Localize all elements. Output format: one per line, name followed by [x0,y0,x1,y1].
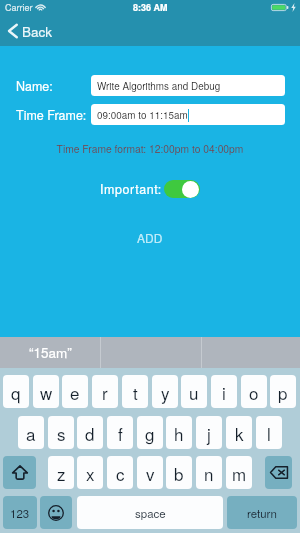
button[interactable]: m [226,456,252,489]
button[interactable]: x [77,456,103,489]
staticText: 8:36 AM [133,1,168,14]
staticText: l [267,421,271,445]
staticText: space [135,505,166,521]
button[interactable]: u [181,375,207,408]
staticText: q [11,380,21,404]
button[interactable]: 09:00am to 11:15am [91,104,285,125]
staticText: f [118,421,123,445]
staticText: m [232,461,247,485]
button[interactable]: c [107,456,133,489]
staticText: y [161,380,170,404]
staticText: “15am” [29,343,72,362]
button[interactable]: v [137,456,163,489]
staticText: 09:00am to 11:15am [97,108,188,122]
button[interactable]: j [196,416,222,449]
staticText: Time Frame: [16,106,87,124]
staticText: 123 [10,505,30,521]
button[interactable]: “15am” [0,337,100,368]
staticText: i [222,380,226,404]
staticText: Back [22,22,53,41]
staticText: c [116,461,125,485]
staticText: ADD [137,229,163,246]
button[interactable]: p [270,375,296,408]
staticText: u [189,380,199,404]
staticText: g [145,421,155,445]
staticText: Name: [16,77,53,95]
button[interactable]: z [48,456,74,489]
button[interactable]: a [18,416,44,449]
staticText: v [146,461,155,485]
button[interactable]: b [166,456,192,489]
button[interactable]: f [107,416,133,449]
staticText: Time Frame format: 12:00pm to 04:00pm [0,141,300,156]
button[interactable]: n [196,456,222,489]
staticText: Carrier [5,1,33,14]
button[interactable]: s [48,416,74,449]
button[interactable]: q [3,375,29,408]
button[interactable]: g [137,416,163,449]
staticText: n [204,461,214,485]
staticText: return [247,505,277,521]
staticText: a [26,421,36,445]
button[interactable]: Shift [3,456,36,489]
button[interactable]: space [77,496,223,529]
button[interactable]: ADD [117,224,183,251]
staticText: w [40,380,53,404]
button[interactable]: l [256,416,282,449]
staticText: j [207,421,211,445]
button[interactable]: r [92,375,118,408]
button[interactable]: Back [0,16,63,46]
button[interactable]: e [62,375,88,408]
button[interactable]: y [152,375,178,408]
button[interactable]: d [77,416,103,449]
staticText: b [174,461,184,485]
button[interactable]: return [227,496,297,529]
staticText: Important: [100,180,162,198]
staticText: p [278,380,288,404]
button[interactable]: i [211,375,237,408]
staticText: t [133,380,138,404]
staticText: h [174,421,184,445]
staticText: k [235,421,244,445]
button[interactable]: t [122,375,148,408]
button[interactable]: w [33,375,59,408]
button[interactable]: Write Algorithms and Debug [91,75,285,96]
staticText: o [249,380,259,404]
staticText: Write Algorithms and Debug [97,79,221,93]
button[interactable]: 123 [3,496,37,529]
staticText: z [57,461,66,485]
staticText: s [57,421,66,445]
staticText: x [86,461,95,485]
button[interactable]: o [241,375,267,408]
button[interactable]: h [166,416,192,449]
staticText: d [85,421,95,445]
button[interactable]: Backspace [265,456,292,489]
button[interactable]: Important toggle [164,180,200,198]
staticText: r [102,380,108,404]
button[interactable]: k [226,416,252,449]
button[interactable]: Emoji [40,496,72,529]
staticText: e [70,380,80,404]
